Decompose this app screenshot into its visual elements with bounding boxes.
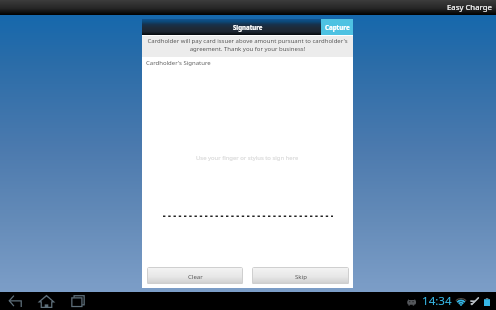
staticText: Clear bbox=[188, 272, 203, 280]
staticText: Skip bbox=[295, 272, 307, 280]
button[interactable]: Capture bbox=[321, 19, 353, 35]
staticText: Capture bbox=[325, 23, 350, 31]
button[interactable]: Home bbox=[31, 292, 62, 310]
staticText: Cardholder's Signature bbox=[146, 59, 211, 67]
button[interactable]: Clear bbox=[147, 267, 243, 284]
staticText: Signature bbox=[233, 23, 263, 31]
staticText: Easy Charge bbox=[447, 2, 492, 13]
staticText: Use your finger or stylus to sign here bbox=[196, 154, 299, 162]
staticText: Cardholder will pay card issuer above am… bbox=[145, 37, 350, 53]
button[interactable]: Recents bbox=[62, 292, 93, 310]
button[interactable]: Back bbox=[0, 292, 31, 310]
staticText: 14:34 bbox=[422, 293, 452, 309]
button[interactable]: Skip bbox=[252, 267, 349, 284]
